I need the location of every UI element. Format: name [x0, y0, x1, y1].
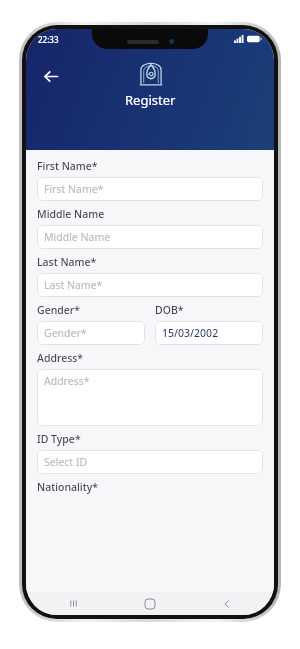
staticText: Last Name* — [44, 278, 103, 292]
staticText: Select ID — [44, 455, 88, 469]
button[interactable]: Back — [36, 61, 66, 91]
staticText: DOB* — [155, 303, 184, 317]
staticText: 22:33 — [38, 34, 59, 45]
staticText: Middle Name — [44, 230, 111, 244]
staticText: First Name* — [37, 159, 98, 173]
button[interactable]: Back — [197, 592, 257, 615]
button[interactable]: Select ID — [37, 450, 263, 474]
staticText: First Name* — [44, 182, 104, 196]
button[interactable]: Address* — [37, 369, 263, 426]
staticText: Register — [125, 91, 176, 109]
staticText: Gender* — [44, 326, 87, 340]
button[interactable]: Last Name* — [37, 273, 263, 297]
staticText: Gender* — [37, 303, 80, 317]
staticText: Address* — [37, 351, 84, 365]
staticText: Last Name* — [37, 255, 97, 269]
staticText: Middle Name — [37, 207, 105, 221]
staticText: Address* — [44, 374, 90, 388]
button[interactable]: Middle Name — [37, 225, 263, 249]
button[interactable]: Gender* — [37, 321, 145, 345]
staticText: ID Type* — [37, 432, 81, 446]
staticText: Nationality* — [37, 480, 99, 494]
button[interactable]: Recent apps — [43, 592, 103, 615]
button[interactable]: First Name* — [37, 177, 263, 201]
staticText: 15/03/2002 — [162, 326, 219, 340]
button[interactable]: Home — [120, 592, 180, 615]
button[interactable]: 15/03/2002 — [155, 321, 263, 345]
